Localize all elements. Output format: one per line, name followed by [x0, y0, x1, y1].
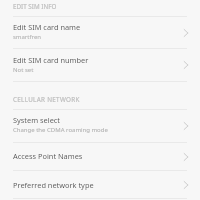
button[interactable]: System select — [0, 110, 200, 142]
button[interactable]: Preferred network type — [0, 171, 200, 198]
staticText: Edit SIM card name — [13, 22, 81, 32]
staticText: smartfren — [13, 33, 42, 41]
button[interactable]: Access Point Names — [0, 143, 200, 170]
staticText: CELLULAR NETWORK — [13, 95, 80, 104]
staticText: Access Point Names — [13, 151, 83, 161]
staticText: System select — [13, 115, 61, 125]
staticText: Not set — [13, 66, 34, 74]
staticText: Edit SIM card number — [13, 55, 89, 65]
button[interactable]: Edit SIM card name — [0, 17, 200, 48]
staticText: Preferred network type — [13, 180, 94, 190]
button[interactable]: Edit SIM card number — [0, 49, 200, 81]
staticText: EDIT SIM INFO — [13, 2, 57, 11]
staticText: Change the CDMA roaming mode — [13, 126, 108, 134]
